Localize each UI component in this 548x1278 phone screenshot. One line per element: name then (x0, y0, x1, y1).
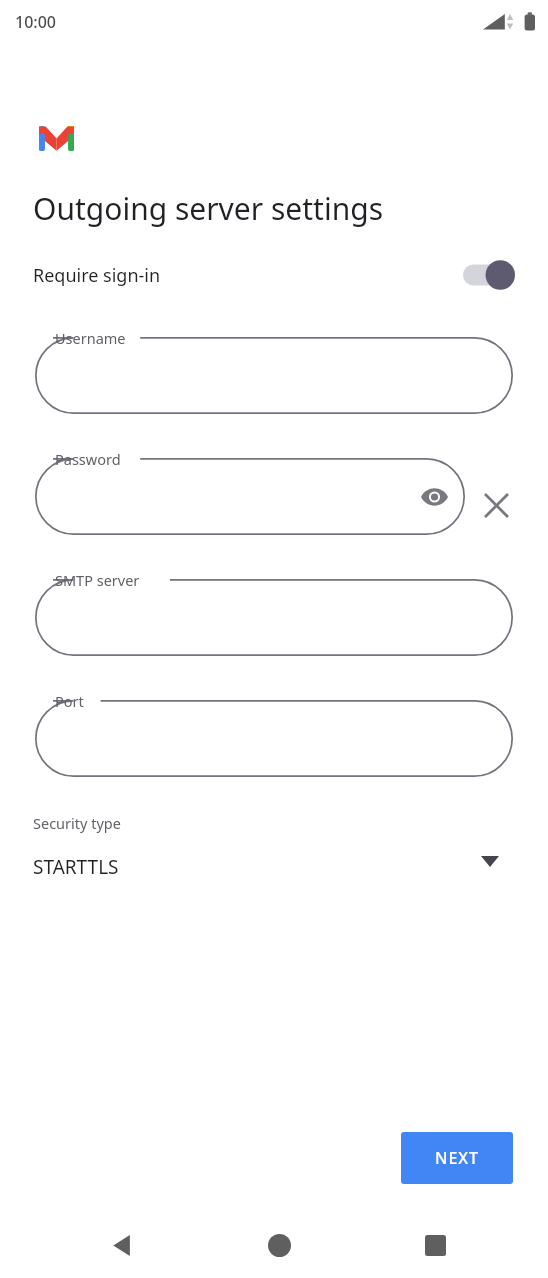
button[interactable]: SMTP server (35, 579, 513, 656)
staticText: Require sign-in (33, 263, 161, 288)
button[interactable]: Show password (413, 476, 455, 518)
button[interactable]: Password (35, 458, 465, 535)
staticText: Port (55, 691, 84, 711)
button[interactable]: Security type (0, 802, 548, 902)
staticText: NEXT (435, 1147, 480, 1169)
button[interactable]: Home (255, 1212, 303, 1278)
staticText: SMTP server (55, 570, 140, 590)
staticText: Username (55, 328, 126, 348)
button[interactable]: Username (35, 337, 513, 414)
staticText: Password (55, 449, 121, 469)
staticText: Outgoing server settings (33, 188, 384, 229)
staticText: 10:00 (15, 11, 56, 33)
button[interactable]: Recents (411, 1212, 459, 1278)
button[interactable]: NEXT (401, 1132, 513, 1184)
staticText: STARTTLS (33, 854, 119, 880)
staticText: Security type (33, 813, 121, 833)
button[interactable]: Require sign-in (0, 250, 548, 300)
button[interactable]: Back (98, 1212, 146, 1278)
button[interactable]: Port (35, 700, 513, 777)
button[interactable]: Clear password (474, 483, 518, 527)
